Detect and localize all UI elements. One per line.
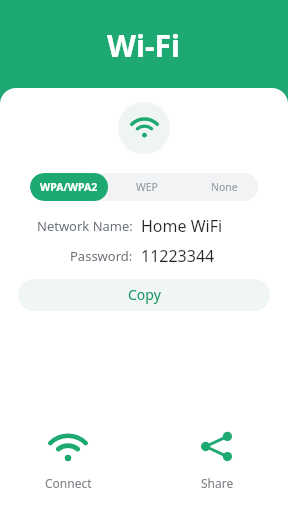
button[interactable]: Connect (32, 425, 104, 489)
button[interactable]: Share (181, 423, 253, 487)
staticText: None (211, 180, 238, 194)
staticText: Copy (128, 285, 161, 304)
staticText: Password: (70, 247, 133, 265)
button[interactable]: WEP (108, 173, 183, 201)
button[interactable]: WPA/WPA2 (30, 173, 108, 201)
staticText: Share (201, 475, 234, 491)
staticText: Home WiFi (141, 215, 223, 237)
other: Wi-Fi (118, 102, 170, 154)
staticText: 11223344 (141, 245, 215, 267)
button[interactable]: None (183, 173, 258, 201)
staticText: Connect (45, 475, 92, 491)
staticText: Wi-Fi (107, 25, 181, 66)
staticText: Network Name: (37, 217, 133, 235)
button[interactable]: Copy (18, 279, 270, 311)
staticText: WPA/WPA2 (40, 180, 98, 194)
staticText: WEP (136, 180, 158, 194)
